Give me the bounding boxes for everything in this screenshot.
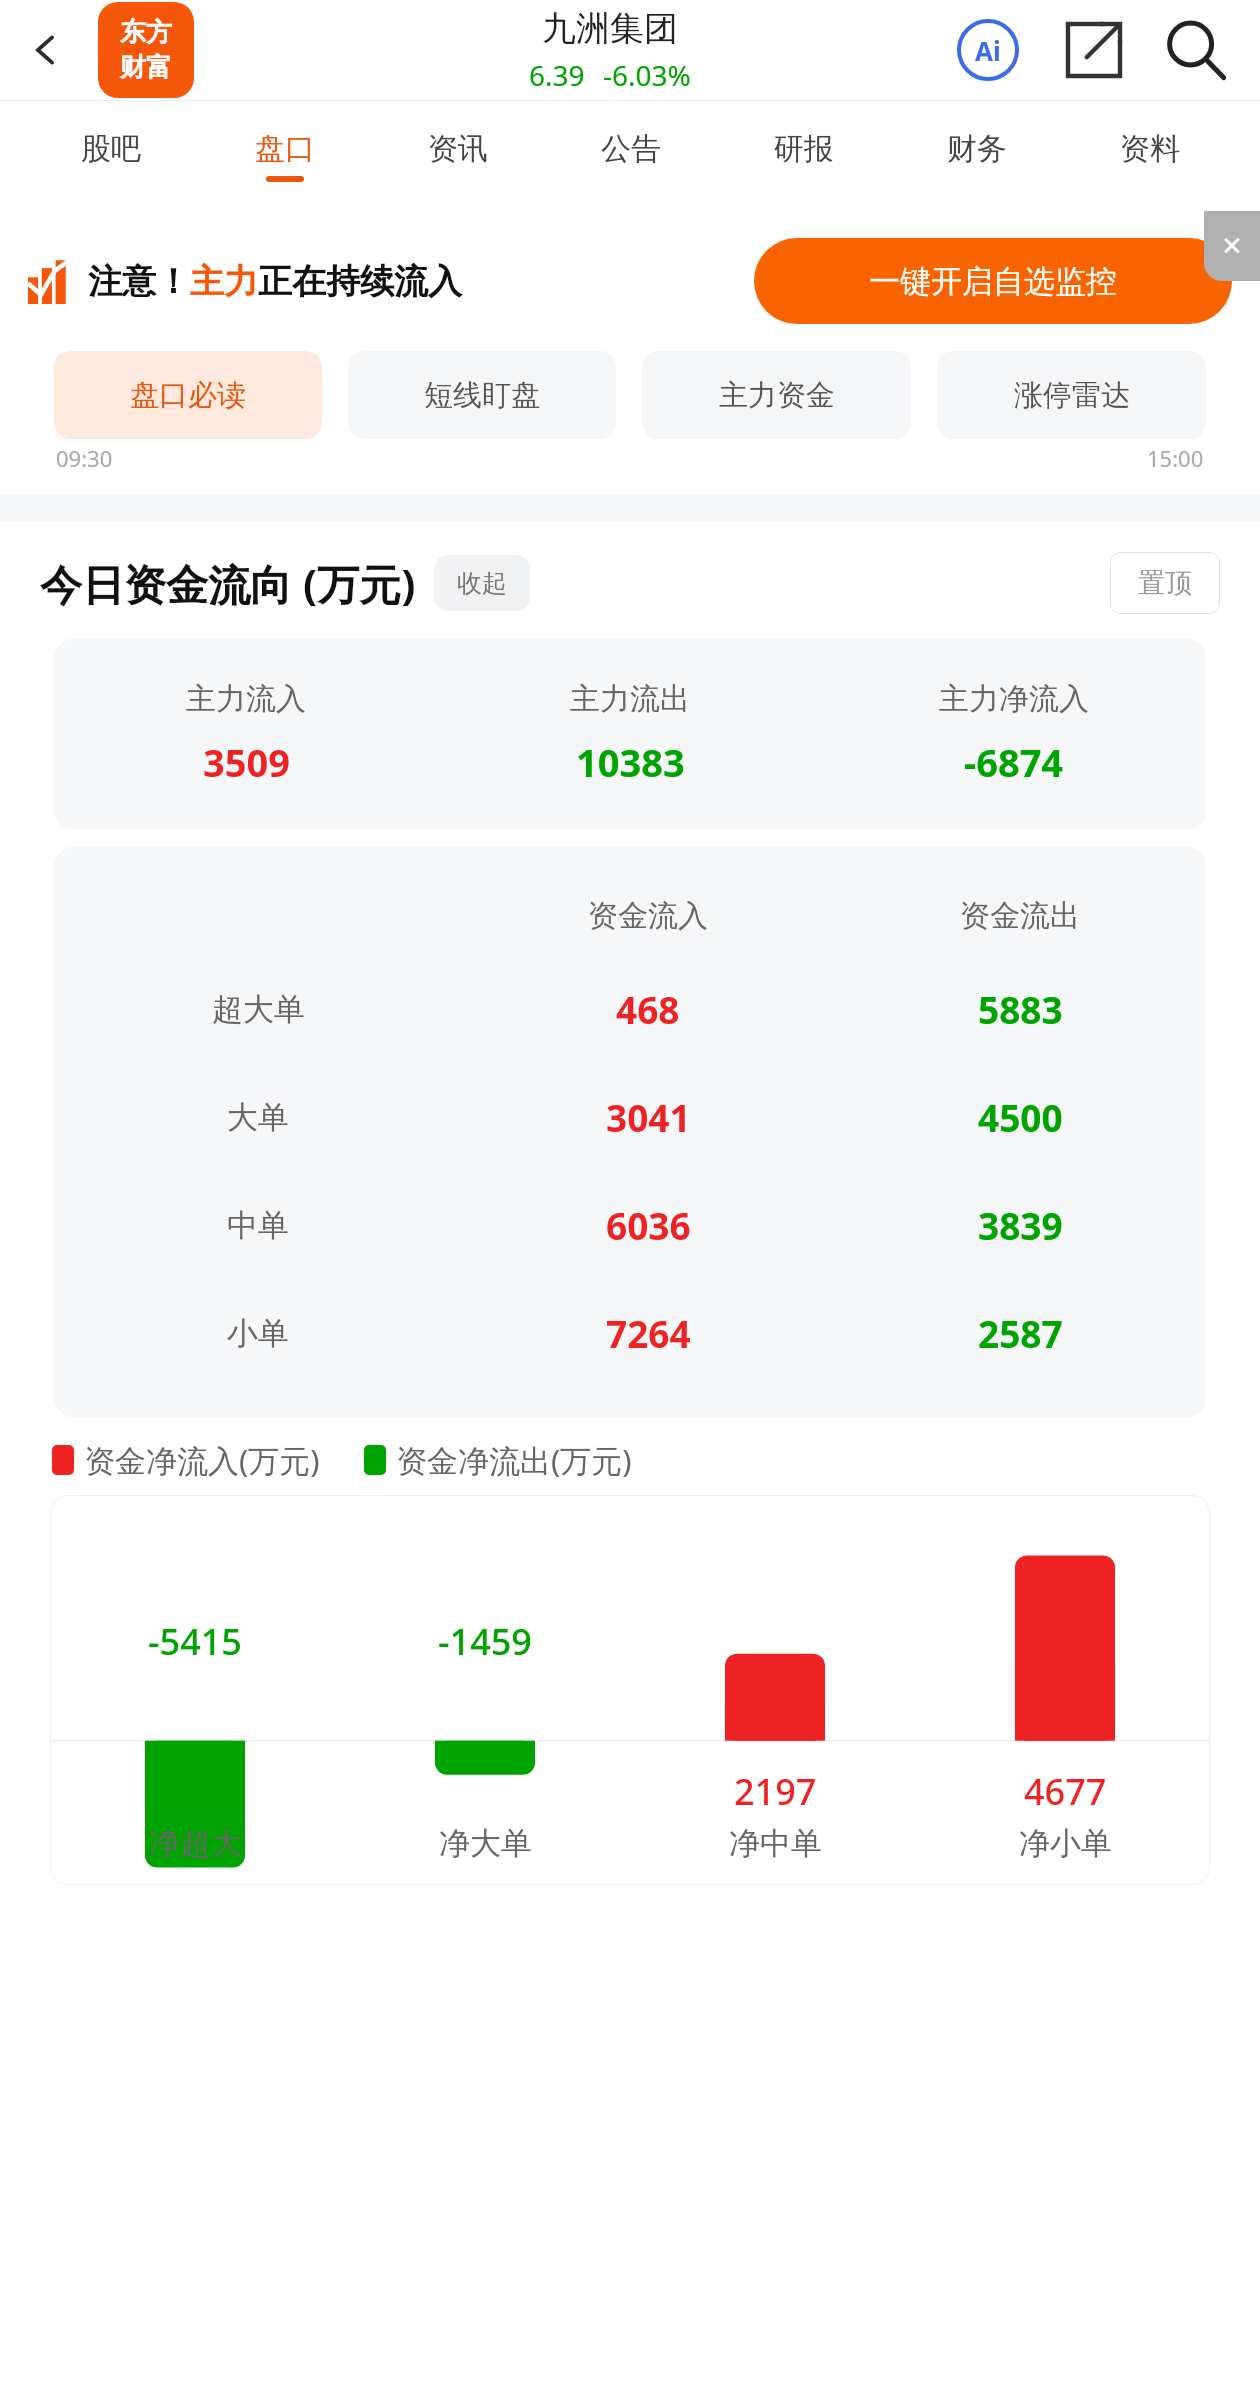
staticText: 资讯: [428, 130, 488, 168]
staticText: 2587: [978, 1308, 1063, 1358]
button[interactable]: 收起: [434, 555, 530, 611]
button[interactable]: 公告: [544, 101, 717, 211]
staticText: 资金流入: [588, 897, 708, 935]
staticText: 短线盯盘: [424, 377, 540, 414]
staticText: 4677: [1024, 1767, 1107, 1816]
staticText: 正在持续流入: [258, 260, 462, 303]
staticText: 6036: [606, 1200, 691, 1250]
button[interactable]: 财务: [890, 101, 1063, 211]
staticText: 主力流入: [186, 680, 306, 718]
staticText: 主力流出: [570, 680, 690, 718]
staticText: 研报: [774, 130, 834, 168]
staticText: ✕: [1221, 231, 1243, 261]
staticText: 股吧: [81, 130, 141, 168]
staticText: 15:00: [1147, 443, 1204, 473]
staticText: 盘口: [255, 130, 315, 168]
staticText: -1459: [438, 1617, 532, 1666]
staticText: 大单: [227, 1098, 289, 1137]
button[interactable]: Close ad: [1204, 211, 1260, 281]
staticText: 小单: [227, 1314, 289, 1353]
staticText: 主力资金: [719, 377, 835, 414]
button[interactable]: 盘口: [198, 101, 371, 211]
button[interactable]: 盘口必读: [54, 351, 322, 439]
staticText: 4500: [978, 1092, 1063, 1142]
staticText: 7264: [606, 1308, 691, 1358]
staticText: -6874: [964, 736, 1064, 788]
staticText: 九洲集团: [542, 7, 678, 50]
staticText: 净大单: [439, 1824, 532, 1863]
button[interactable]: 资讯: [371, 101, 544, 211]
button[interactable]: 主力资金: [642, 351, 911, 439]
staticText: 盘口必读: [130, 377, 246, 414]
staticText: 收起: [457, 568, 507, 599]
staticText: 主力净流入: [939, 680, 1089, 718]
staticText: 净小单: [1019, 1824, 1112, 1863]
button[interactable]: 一键开启自选监控: [754, 238, 1232, 324]
button[interactable]: 短线盯盘: [348, 351, 616, 439]
button[interactable]: Back: [10, 14, 82, 86]
staticText: 资金流出: [960, 897, 1080, 935]
staticText: 资料: [1120, 130, 1180, 168]
staticText: Ai: [975, 33, 1001, 68]
staticText: 今日资金流向 (万元): [40, 555, 416, 612]
button[interactable]: 置顶: [1110, 552, 1220, 614]
staticText: 5883: [978, 984, 1063, 1034]
staticText: 10383: [576, 736, 685, 788]
staticText: 资金净流入(万元): [84, 1439, 320, 1481]
staticText: 3041: [606, 1092, 691, 1142]
staticText: -6.03%: [603, 56, 691, 94]
staticText: 涨停雷达: [1014, 377, 1130, 414]
staticText: 净超大: [149, 1824, 242, 1863]
staticText: 财富: [120, 51, 172, 84]
button[interactable]: 资料: [1063, 101, 1236, 211]
staticText: 中单: [227, 1206, 289, 1245]
staticText: 东方: [120, 16, 172, 49]
staticText: 超大单: [212, 990, 305, 1029]
button[interactable]: 股吧: [24, 101, 198, 211]
staticText: 3839: [978, 1200, 1063, 1250]
staticText: 主力: [190, 260, 258, 303]
button[interactable]: 涨停雷达: [937, 351, 1206, 439]
button[interactable]: Share: [1054, 10, 1134, 90]
staticText: 资金净流出(万元): [396, 1439, 632, 1481]
staticText: 468: [616, 984, 680, 1034]
staticText: 09:30: [56, 443, 113, 473]
staticText: 财务: [947, 130, 1007, 168]
staticText: 净中单: [729, 1824, 822, 1863]
button[interactable]: Search: [1154, 8, 1238, 92]
staticText: 6.39: [529, 56, 585, 94]
button[interactable]: AI assistant: [946, 8, 1030, 92]
staticText: 公告: [601, 130, 661, 168]
button[interactable]: East Money: [98, 2, 194, 98]
staticText: 一键开启自选监控: [869, 262, 1117, 301]
staticText: -5415: [148, 1617, 242, 1666]
staticText: 置顶: [1138, 566, 1192, 600]
button[interactable]: 研报: [717, 101, 890, 211]
staticText: 注意！: [88, 260, 190, 303]
staticText: 2197: [734, 1767, 817, 1816]
staticText: 3509: [203, 736, 290, 788]
